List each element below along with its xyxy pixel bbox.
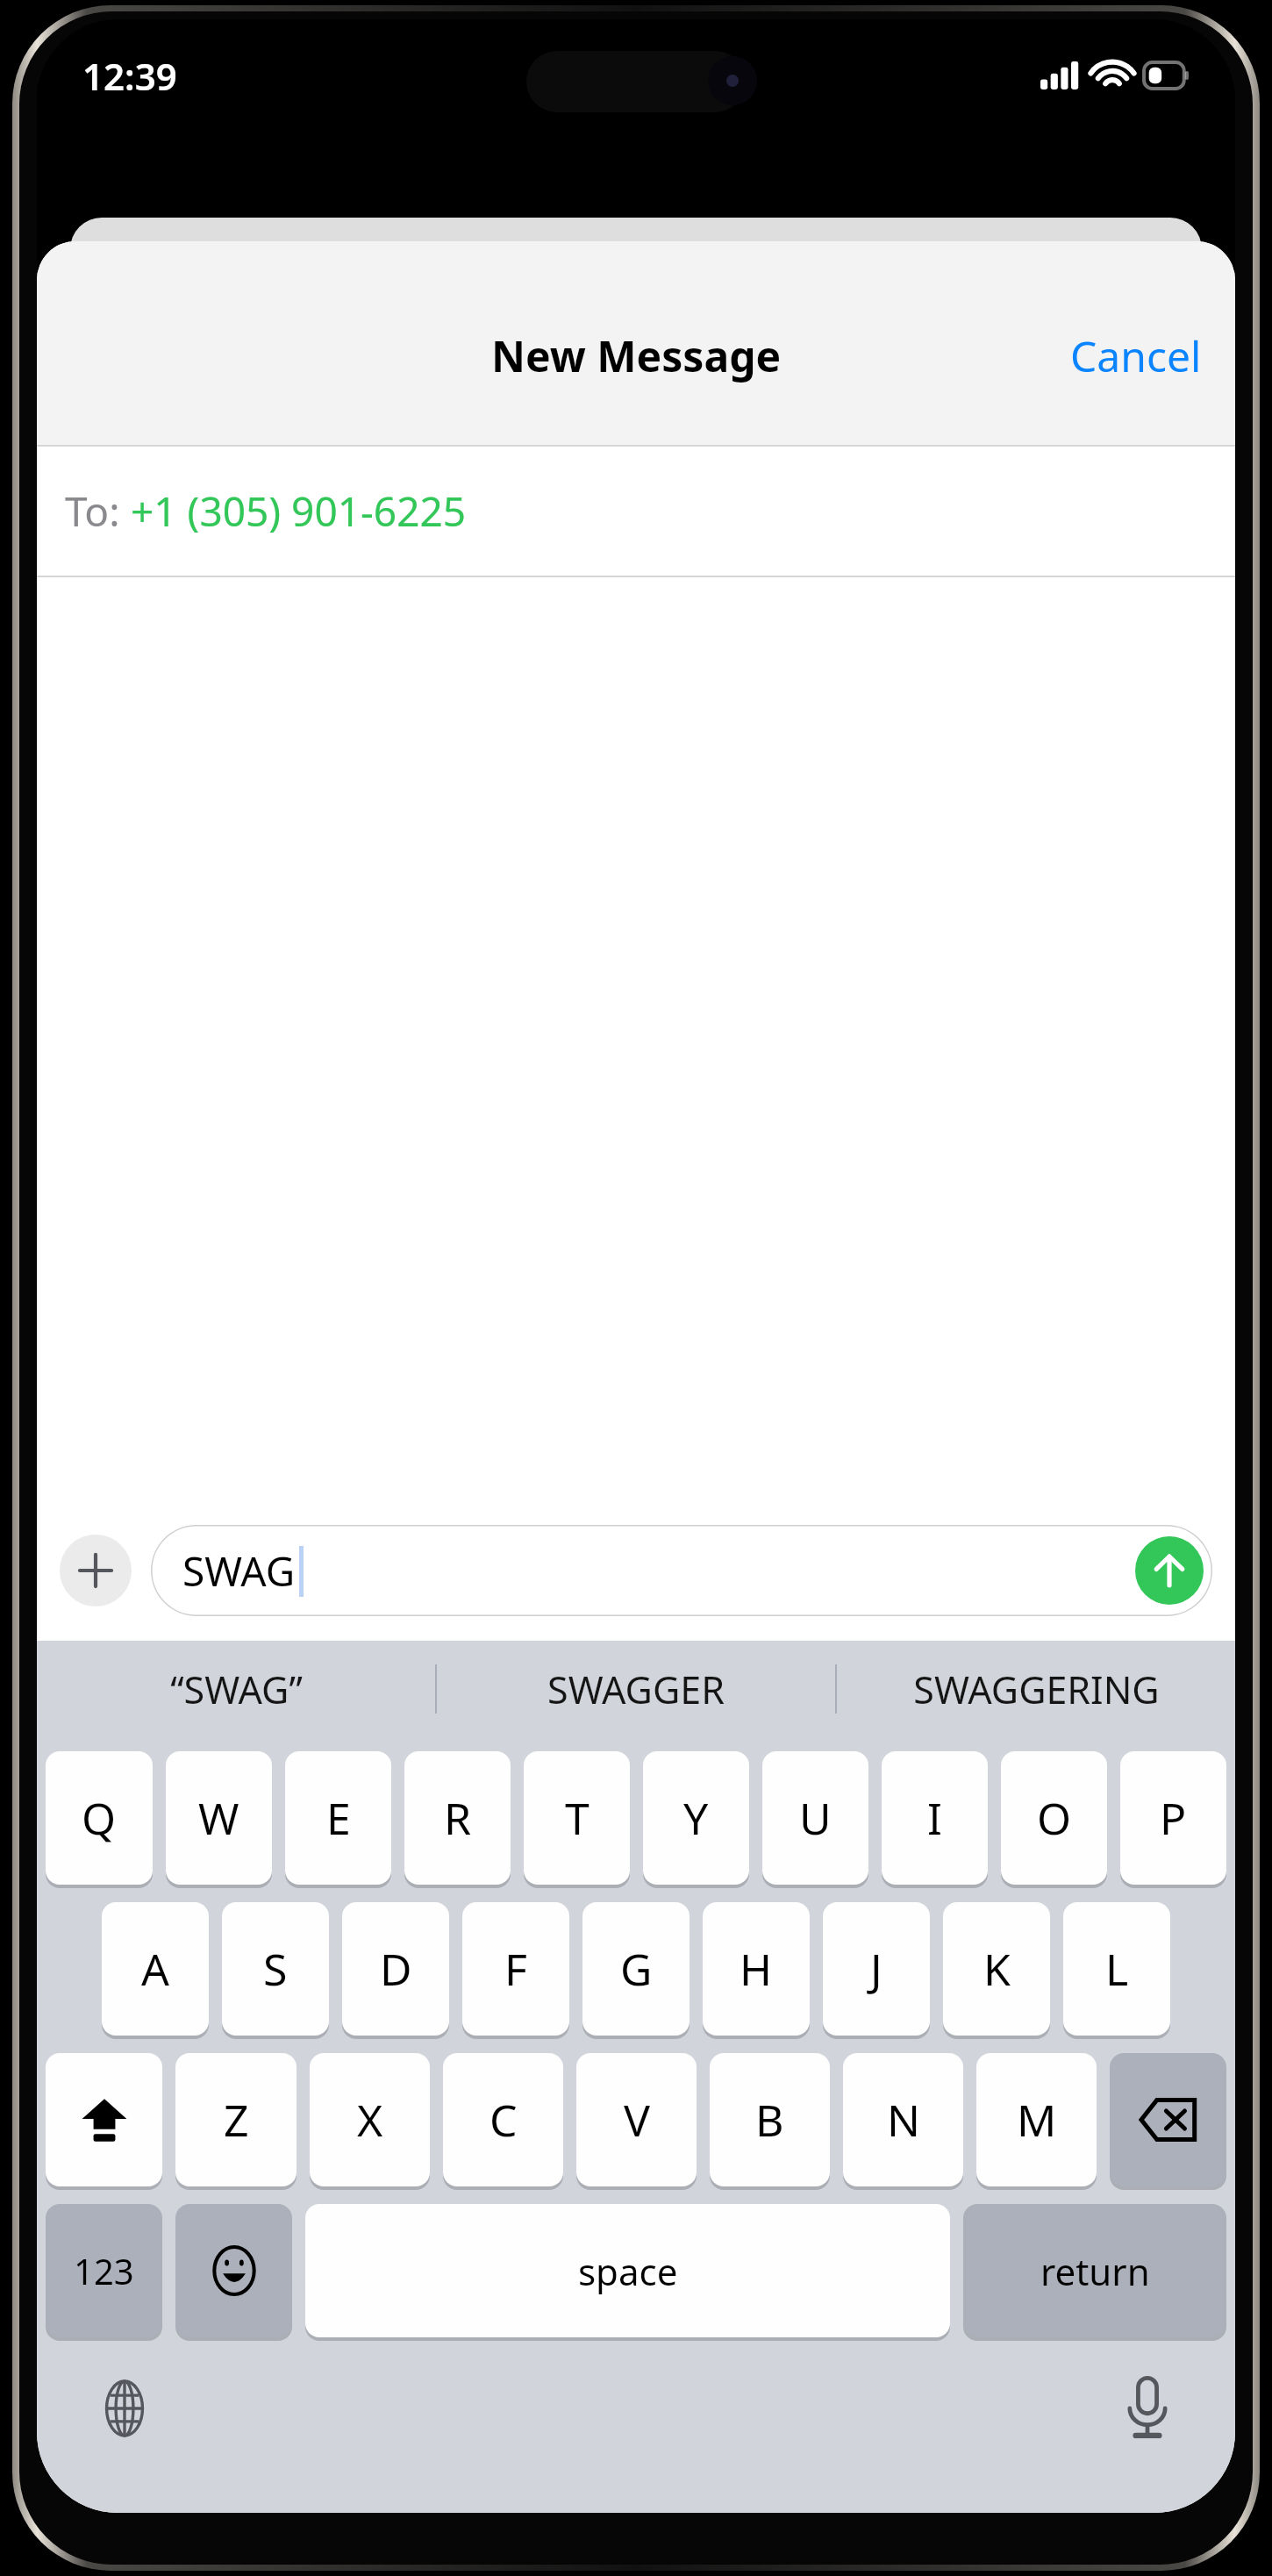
staticText: D [380, 1939, 412, 1999]
button[interactable] [175, 2204, 292, 2337]
button[interactable]: Cancel [1037, 311, 1235, 400]
other: Shift [46, 2053, 162, 2186]
button[interactable]: N [843, 2053, 963, 2186]
staticText: SWAG [182, 1543, 296, 1599]
button[interactable]: S [222, 1902, 329, 2036]
button[interactable]: V [576, 2053, 697, 2186]
button[interactable]: T [524, 1751, 630, 1885]
button[interactable]: R [404, 1751, 511, 1885]
staticText: return [1040, 2246, 1150, 2296]
staticText: R [444, 1788, 472, 1848]
staticText: Z [224, 2090, 249, 2150]
button[interactable]: C [443, 2053, 563, 2186]
staticText: K [983, 1939, 1011, 1999]
button[interactable]: Dictation [1105, 2366, 1190, 2451]
staticText: SWAGGER [547, 1664, 725, 1715]
button[interactable]: SWAG [151, 1525, 1212, 1616]
button[interactable]: I [882, 1751, 988, 1885]
staticText: SWAGGERING [913, 1664, 1160, 1715]
button[interactable]: Change keyboard [82, 2366, 167, 2451]
button[interactable]: SWAGGERING [837, 1641, 1235, 1737]
staticText: Cancel [1070, 327, 1202, 384]
button[interactable]: “SWAG” [37, 1641, 435, 1737]
button[interactable]: F [462, 1902, 569, 2036]
button[interactable]: SWAGGER [437, 1641, 835, 1737]
staticText: S [263, 1939, 288, 1999]
button[interactable]: Z [175, 2053, 297, 2186]
button[interactable]: E [285, 1751, 391, 1885]
staticText: A [141, 1939, 169, 1999]
staticText: 123 [74, 2247, 134, 2294]
button[interactable] [1110, 2053, 1226, 2186]
staticText: I [927, 1788, 942, 1848]
staticText: M [1017, 2090, 1057, 2150]
staticText: P [1160, 1788, 1187, 1848]
button[interactable]: Y [643, 1751, 749, 1885]
staticText: G [620, 1939, 653, 1999]
staticText: V [624, 2090, 650, 2150]
staticText: H [740, 1939, 773, 1999]
button[interactable]: K [943, 1902, 1050, 2036]
button[interactable]: G [582, 1902, 690, 2036]
staticText: F [504, 1939, 527, 1999]
staticText: space [578, 2246, 678, 2296]
staticText: W [198, 1788, 239, 1848]
staticText: E [326, 1788, 351, 1848]
staticText: U [799, 1788, 832, 1848]
button[interactable]: L [1063, 1902, 1170, 2036]
staticText: O [1037, 1788, 1072, 1848]
button[interactable]: Send [1135, 1536, 1204, 1605]
staticText: T [565, 1788, 590, 1848]
button[interactable]: U [762, 1751, 868, 1885]
staticText: X [357, 2090, 383, 2150]
staticText: +1 (305) 901-6225 [131, 483, 467, 539]
staticText: C [490, 2090, 518, 2150]
staticText: J [870, 1939, 883, 1999]
button[interactable] [46, 2053, 162, 2186]
staticText: N [887, 2090, 920, 2150]
button[interactable]: 123 [46, 2204, 162, 2337]
staticText: Y [683, 1788, 709, 1848]
button[interactable]: To: [37, 447, 1235, 576]
button[interactable]: D [342, 1902, 449, 2036]
staticText: New Message [491, 327, 782, 384]
staticText: “SWAG” [170, 1664, 303, 1715]
other: Backspace [1110, 2053, 1226, 2186]
button[interactable]: J [823, 1902, 930, 2036]
button[interactable]: W [166, 1751, 272, 1885]
button[interactable]: A [102, 1902, 209, 2036]
button[interactable]: P [1120, 1751, 1226, 1885]
button[interactable]: B [710, 2053, 830, 2186]
button[interactable]: O [1001, 1751, 1107, 1885]
staticText: To: [65, 483, 131, 539]
button[interactable]: H [703, 1902, 810, 2036]
button[interactable]: X [310, 2053, 430, 2186]
button[interactable]: space [305, 2204, 950, 2337]
button[interactable]: Add attachment [60, 1535, 132, 1606]
staticText: Q [82, 1788, 117, 1848]
other: Emoji [175, 2204, 292, 2337]
staticText: L [1105, 1939, 1129, 1999]
staticText: 12:39 [82, 51, 177, 101]
button[interactable]: M [976, 2053, 1097, 2186]
staticText: B [755, 2090, 784, 2150]
button[interactable]: return [963, 2204, 1226, 2337]
button[interactable]: Q [46, 1751, 153, 1885]
